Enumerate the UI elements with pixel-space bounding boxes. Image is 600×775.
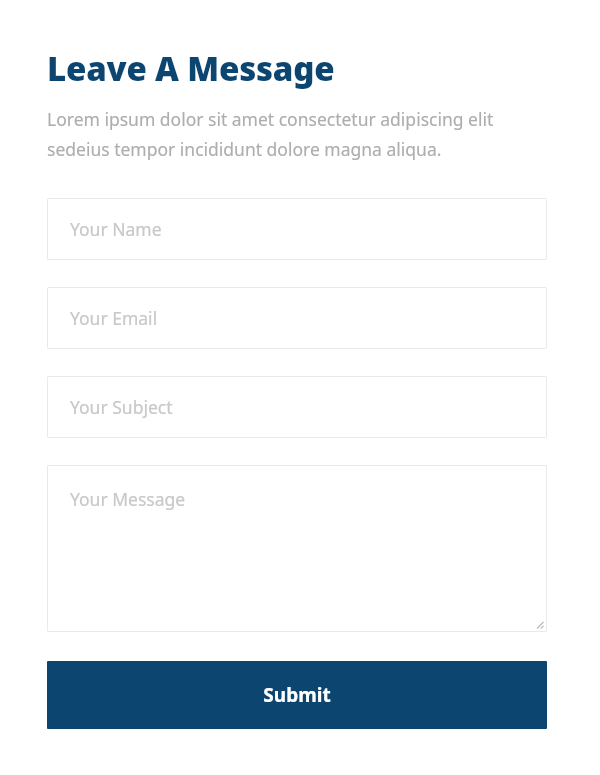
staticText: Your Name (70, 217, 162, 241)
staticText: Leave A Message (47, 46, 335, 91)
staticText: Your Subject (70, 395, 173, 419)
staticText: Your Email (70, 306, 158, 330)
button[interactable]: Your Message (47, 465, 547, 632)
staticText: Submit (263, 682, 331, 708)
staticText: Your Message (70, 487, 186, 511)
button[interactable]: Your Subject (47, 376, 547, 438)
staticText: Lorem ipsum dolor sit amet consectetur a… (47, 107, 547, 161)
button[interactable]: Your Name (47, 198, 547, 260)
button[interactable]: Submit (47, 661, 547, 729)
button[interactable]: Your Email (47, 287, 547, 349)
